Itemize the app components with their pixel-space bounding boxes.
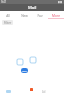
other: App icon xyxy=(30,88,33,91)
button[interactable]: Fav xyxy=(32,11,48,19)
button[interactable]: Add xyxy=(21,68,28,73)
other: Sync xyxy=(17,59,23,65)
other: Messages xyxy=(30,57,36,63)
button[interactable]: More xyxy=(48,11,64,19)
button[interactable]: All xyxy=(0,11,16,19)
staticText: ▮▮▮ xyxy=(58,1,63,4)
staticText: All xyxy=(6,14,10,18)
staticText: 9:41 xyxy=(1,0,7,4)
staticText: New xyxy=(21,14,28,18)
staticText: Filter xyxy=(4,21,12,25)
staticText: Mail xyxy=(28,5,37,11)
staticText: Fav xyxy=(37,14,43,18)
button[interactable]: Filter xyxy=(2,20,13,25)
staticText: Add xyxy=(22,69,27,72)
staticText: Ad xyxy=(42,90,46,94)
staticText: More xyxy=(52,14,60,18)
button[interactable]: New xyxy=(16,11,32,19)
